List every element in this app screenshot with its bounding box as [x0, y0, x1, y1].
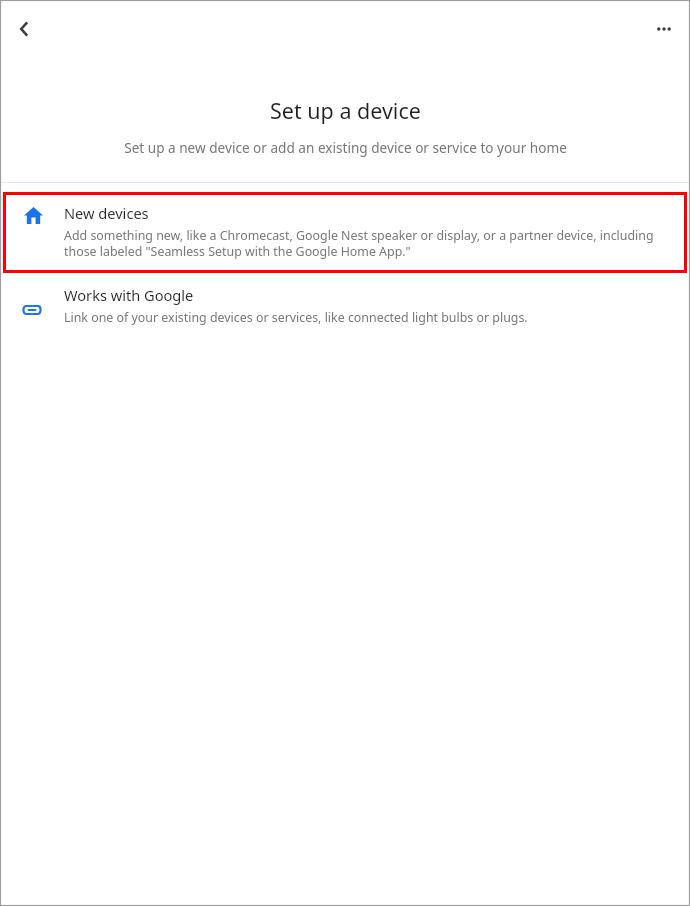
button[interactable]: Works with Google [0, 282, 690, 338]
button[interactable]: More options [642, 7, 686, 51]
staticText: Link one of your existing devices or ser… [64, 309, 528, 326]
staticText: Set up a new device or add an existing d… [124, 138, 567, 157]
staticText: New devices [64, 203, 149, 223]
button[interactable]: Back [3, 7, 47, 51]
staticText: Set up a device [270, 96, 421, 125]
staticText: Works with Google [64, 285, 194, 305]
staticText: Add something new, like a Chromecast, Go… [64, 227, 659, 260]
button[interactable]: New devices [3, 192, 687, 273]
